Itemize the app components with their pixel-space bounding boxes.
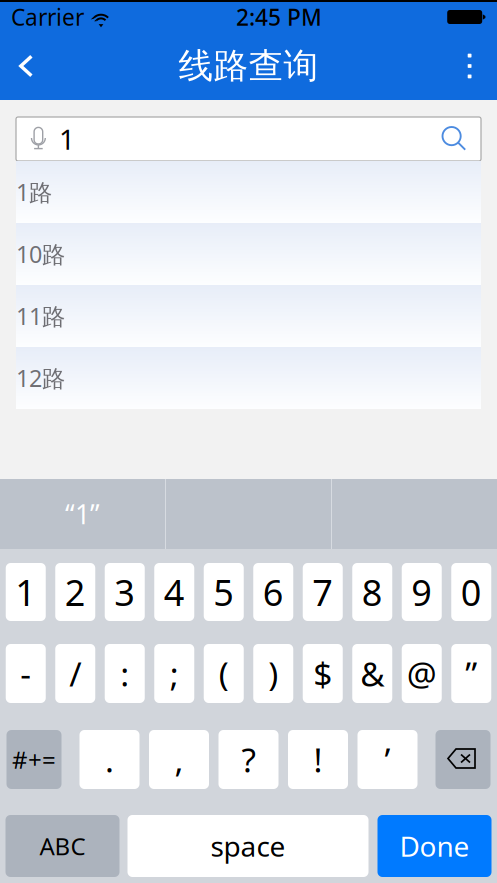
staticText: 4 <box>164 567 185 616</box>
button[interactable]: . <box>79 730 139 789</box>
staticText: 11路 <box>16 300 65 332</box>
staticText: Done <box>399 827 469 865</box>
button[interactable]: 3 <box>105 563 145 621</box>
button[interactable]: , <box>149 730 209 789</box>
staticText: 2 <box>65 567 86 616</box>
button[interactable]: ; <box>154 644 194 703</box>
button[interactable]: 9 <box>402 563 442 621</box>
button[interactable]: Back <box>0 32 57 100</box>
button[interactable]: 1 <box>6 563 46 621</box>
staticText: $ <box>313 651 332 696</box>
staticText: 1路 <box>16 176 52 208</box>
staticText: 9 <box>411 567 432 616</box>
button[interactable]: @ <box>402 644 442 703</box>
staticText: space <box>210 827 285 865</box>
staticText: & <box>360 651 384 696</box>
staticText: 3 <box>114 567 135 616</box>
staticText: 8 <box>362 567 383 616</box>
button[interactable]: 10路 <box>16 223 481 285</box>
staticText: ” <box>465 651 477 696</box>
button[interactable]: #+= <box>6 730 61 789</box>
staticText: 6 <box>263 567 284 616</box>
button[interactable]: Done <box>377 815 491 877</box>
button[interactable]: 4 <box>154 563 194 621</box>
button[interactable]: More options <box>446 32 497 100</box>
button[interactable]: 12路 <box>16 347 481 409</box>
staticText: 5 <box>213 567 234 616</box>
button[interactable]: - <box>6 644 46 703</box>
staticText: ’ <box>384 737 390 782</box>
button[interactable]: : <box>105 644 145 703</box>
button[interactable]: ! <box>288 730 348 789</box>
staticText: 0 <box>461 567 482 616</box>
staticText: / <box>69 651 81 696</box>
staticText: 线路查询 <box>178 44 318 88</box>
button[interactable]: ABC <box>5 815 119 877</box>
button[interactable]: space <box>127 815 368 877</box>
button[interactable]: Search <box>442 126 467 151</box>
staticText: ABC <box>39 830 85 862</box>
staticText: 10路 <box>16 238 65 270</box>
button[interactable]: $ <box>303 644 343 703</box>
staticText: ? <box>241 737 255 782</box>
button[interactable]: “1” <box>0 479 165 549</box>
button[interactable]: 2 <box>55 563 95 621</box>
staticText: @ <box>407 651 437 696</box>
button[interactable]: 7 <box>303 563 343 621</box>
button[interactable]: 11路 <box>16 285 481 347</box>
staticText: 1 <box>15 567 36 616</box>
button[interactable]: 5 <box>204 563 244 621</box>
button[interactable]: ” <box>451 644 491 703</box>
staticText: #+= <box>12 743 56 776</box>
staticText: ! <box>313 737 322 782</box>
staticText: , <box>174 737 183 782</box>
staticText: 7 <box>312 567 333 616</box>
staticText: . <box>105 737 114 782</box>
button[interactable]: ( <box>204 644 244 703</box>
button[interactable]: 1路 <box>16 161 481 223</box>
staticText: - <box>20 651 31 696</box>
button[interactable]: ’ <box>357 730 417 789</box>
button[interactable]: ) <box>253 644 293 703</box>
staticText: 12路 <box>16 362 65 394</box>
button[interactable]: 0 <box>451 563 491 621</box>
button[interactable]: ? <box>218 730 278 789</box>
staticText: 1 <box>59 120 75 158</box>
button[interactable]: & <box>352 644 392 703</box>
staticText: 2:45 PM <box>236 2 322 32</box>
button[interactable]: Delete <box>435 730 490 789</box>
staticText: : <box>120 651 129 696</box>
staticText: ; <box>170 651 179 696</box>
button[interactable]: 6 <box>253 563 293 621</box>
button[interactable]: / <box>55 644 95 703</box>
staticText: Carrier <box>11 2 84 32</box>
button[interactable]: 8 <box>352 563 392 621</box>
staticText: “1” <box>65 496 100 532</box>
staticText: ) <box>268 651 278 696</box>
staticText: ( <box>219 651 229 696</box>
